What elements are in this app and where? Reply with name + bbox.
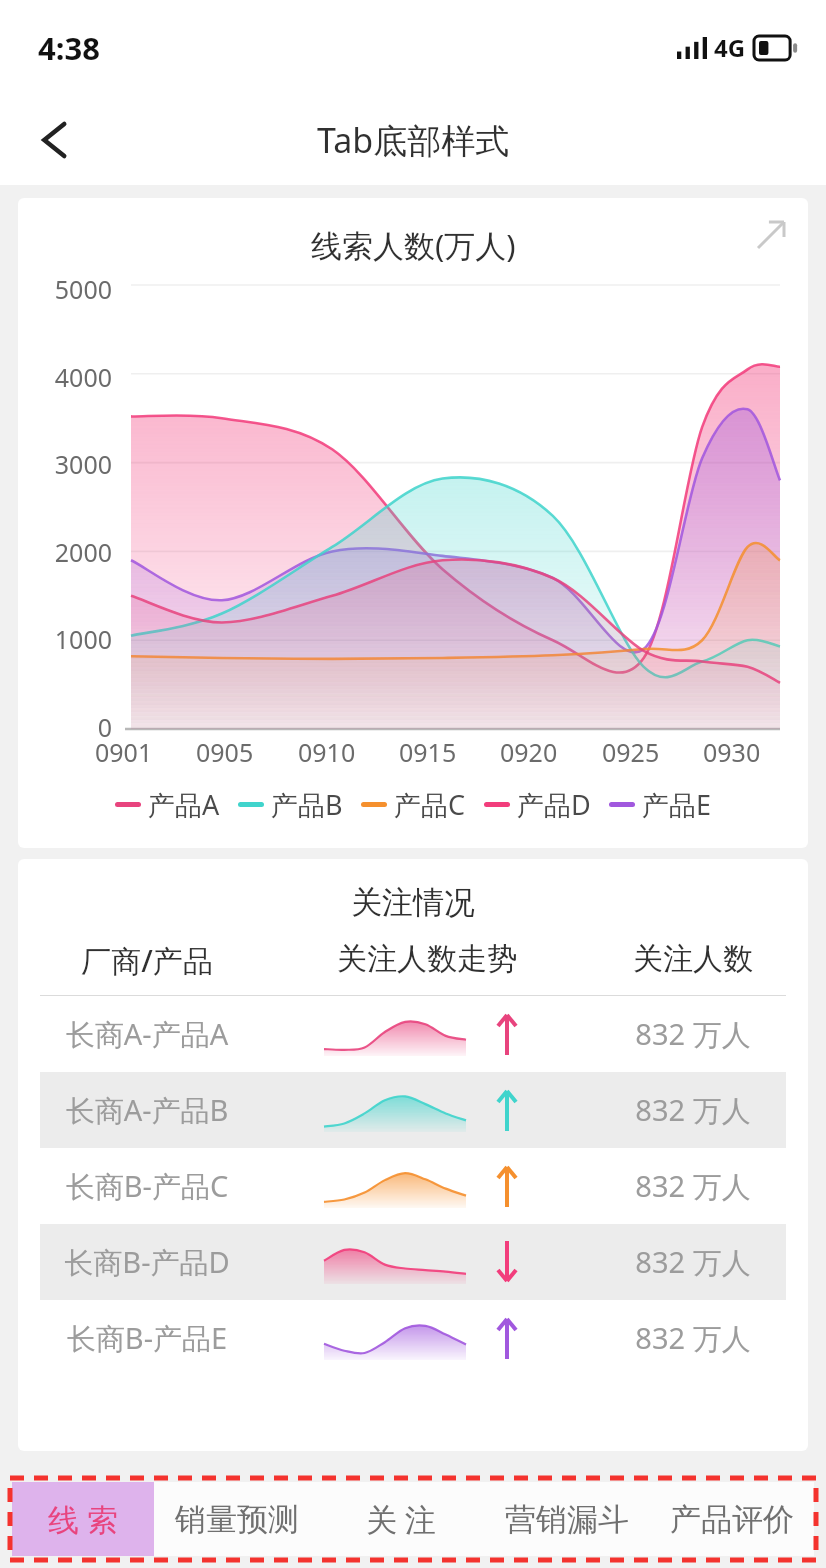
staticText: 4:38 (38, 27, 100, 69)
staticText: 0925 (602, 735, 660, 769)
staticText: 0930 (703, 735, 761, 769)
staticText: 0910 (298, 735, 356, 769)
staticText: 0920 (500, 735, 558, 769)
staticText: 长商A-产品A (40, 1014, 254, 1054)
staticText: 长商B-产品D (40, 1242, 254, 1282)
staticText: 5000 (34, 272, 112, 306)
staticText: 关注情况 (18, 883, 808, 922)
staticText: 长商A-产品B (40, 1090, 254, 1130)
staticText: 832 万人 (600, 1166, 786, 1206)
button[interactable]: 销量预测 (154, 1482, 319, 1556)
staticText: 832 万人 (600, 1014, 786, 1054)
staticText: 关注人数走势 (254, 940, 600, 978)
staticText: 营销漏斗 (505, 1500, 629, 1539)
staticText: 关注人数 (600, 940, 786, 978)
button[interactable]: 线 索 (12, 1482, 154, 1556)
staticText: 1000 (34, 622, 112, 656)
staticText: 2000 (34, 535, 112, 569)
staticText: 产品评价 (670, 1500, 794, 1539)
button[interactable]: Back (22, 109, 84, 171)
button[interactable]: 长商A-产品A (40, 996, 786, 1072)
button[interactable]: 长商B-产品E (40, 1300, 786, 1376)
staticText: 0901 (95, 735, 153, 769)
staticText: 832 万人 (600, 1318, 786, 1358)
staticText: 产品E (642, 786, 712, 823)
button[interactable]: 线索人数(万人) (18, 198, 808, 848)
staticText: 4000 (34, 360, 112, 394)
button[interactable]: 产品评价 (649, 1482, 814, 1556)
button[interactable]: 营销漏斗 (484, 1482, 649, 1556)
staticText: 832 万人 (600, 1090, 786, 1130)
staticText: 线 索 (48, 1498, 119, 1540)
button[interactable]: 长商B-产品D (40, 1224, 786, 1300)
staticText: 4G (714, 31, 746, 64)
staticText: 产品D (517, 786, 591, 823)
staticText: 长商B-产品E (40, 1318, 254, 1358)
staticText: 线索人数(万人) (311, 224, 516, 266)
staticText: 销量预测 (175, 1500, 299, 1539)
staticText: Tab底部样式 (317, 117, 510, 163)
staticText: 产品A (148, 786, 220, 823)
staticText: 关 注 (366, 1498, 437, 1540)
button[interactable]: 长商A-产品B (40, 1072, 786, 1148)
button[interactable]: 长商B-产品C (40, 1148, 786, 1224)
staticText: 长商B-产品C (40, 1166, 254, 1206)
staticText: 0905 (196, 735, 254, 769)
button[interactable]: Expand chart (748, 212, 794, 258)
staticText: 0915 (399, 735, 457, 769)
staticText: 832 万人 (600, 1242, 786, 1282)
button[interactable]: 关 注 (319, 1482, 484, 1556)
staticText: 0 (34, 710, 112, 744)
staticText: 产品C (394, 786, 466, 823)
staticText: 产品B (271, 786, 343, 823)
staticText: 厂商/产品 (40, 940, 254, 981)
staticText: 3000 (34, 447, 112, 481)
